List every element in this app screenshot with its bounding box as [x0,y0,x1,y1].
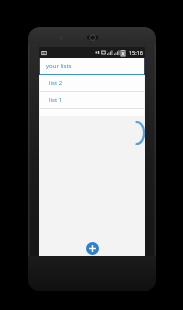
staticText: 15:16 [128,49,143,56]
button[interactable]: list 2 [40,75,144,91]
button[interactable]: Add list [86,242,99,255]
staticText: list 2 [49,79,63,87]
staticText: your lists [46,62,72,70]
button[interactable]: list 1 [40,92,144,108]
staticText: list 1 [49,96,63,104]
button[interactable]: your lists [40,58,144,74]
